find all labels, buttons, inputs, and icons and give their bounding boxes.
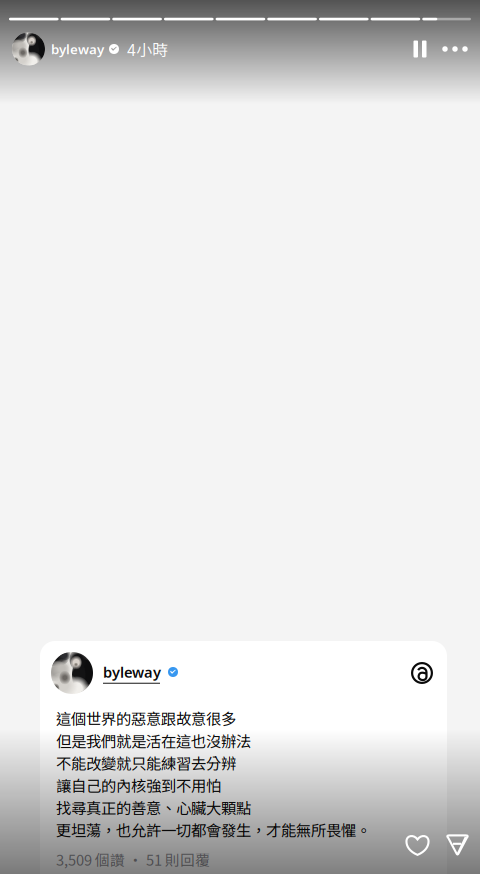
staticText: 4小時 bbox=[127, 37, 168, 61]
staticText: 找尋真正的善意、心臟大顆點 bbox=[56, 796, 251, 818]
button[interactable]: Open in Threads bbox=[411, 662, 433, 684]
staticText: byleway bbox=[51, 40, 104, 58]
button[interactable]: Pause bbox=[403, 32, 437, 66]
staticText: 3,509 個讚 · 51 則回覆 bbox=[56, 849, 210, 870]
button[interactable]: Like bbox=[406, 828, 429, 862]
staticText: 這個世界的惡意跟故意很多 bbox=[56, 707, 236, 729]
button[interactable]: Send bbox=[446, 828, 469, 862]
button[interactable]: byleway bbox=[12, 32, 168, 65]
staticText: 但是我們就是活在這也沒辦法 bbox=[56, 729, 251, 751]
button[interactable]: byleway bbox=[51, 652, 178, 694]
staticText: 不能改變就只能練習去分辨 bbox=[56, 752, 236, 774]
staticText: 更坦蕩，也允許一切都會發生，才能無所畏懼。 bbox=[56, 818, 371, 841]
button[interactable]: More options bbox=[437, 32, 473, 66]
staticText: 讓自己的內核強到不用怕 bbox=[56, 774, 221, 796]
staticText: byleway bbox=[103, 662, 161, 682]
